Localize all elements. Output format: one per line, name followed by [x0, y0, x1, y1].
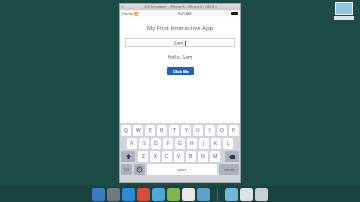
staticText: S — [143, 140, 146, 147]
staticText: T — [173, 127, 176, 134]
staticText: Z — [142, 153, 145, 160]
staticText: E — [149, 127, 152, 134]
staticText: D — [154, 140, 158, 147]
staticText: P — [232, 127, 236, 134]
button[interactable]: N — [198, 151, 208, 162]
button[interactable]: Delete — [225, 151, 239, 162]
button[interactable]: R — [157, 125, 167, 136]
button[interactable]: Y — [181, 125, 191, 136]
button[interactable]: W — [133, 125, 143, 136]
button[interactable]: I — [205, 125, 215, 136]
button[interactable]: Close — [121, 5, 124, 8]
button[interactable]: Click Me — [167, 67, 194, 75]
button[interactable]: Mail — [152, 188, 165, 201]
button[interactable]: V — [174, 151, 184, 162]
button[interactable]: Desktop file icon — [333, 2, 355, 20]
button[interactable]: U — [193, 125, 203, 136]
button[interactable]: Downloads — [225, 188, 238, 201]
button[interactable]: K — [211, 138, 221, 149]
staticText: G — [178, 140, 182, 147]
button[interactable]: Launchpad — [107, 188, 120, 201]
staticText: F — [167, 140, 170, 147]
staticText: Q — [124, 127, 128, 134]
staticText: I — [209, 127, 211, 134]
button[interactable]: M — [210, 151, 220, 162]
button[interactable]: Xcode — [182, 188, 195, 201]
button[interactable]: Notes — [197, 188, 210, 201]
button[interactable]: D — [151, 138, 161, 149]
button[interactable]: P — [229, 125, 239, 136]
button[interactable]: Trash — [255, 188, 268, 201]
button[interactable]: H — [187, 138, 197, 149]
staticText: N — [201, 153, 205, 160]
button[interactable]: G — [175, 138, 185, 149]
staticText: 9:41 AM — [178, 11, 192, 16]
button[interactable]: O — [217, 125, 227, 136]
staticText: B — [189, 153, 193, 160]
button[interactable]: Shift — [121, 151, 135, 162]
button[interactable]: return — [219, 164, 239, 175]
button[interactable]: Q — [121, 125, 131, 136]
button[interactable]: Z — [138, 151, 148, 162]
button[interactable]: L — [223, 138, 233, 149]
staticText: A — [130, 140, 134, 147]
staticText: My First Interactive App — [125, 24, 235, 32]
staticText: Click Me — [173, 69, 189, 74]
staticText: K — [214, 140, 218, 147]
button[interactable]: Documents — [240, 188, 253, 201]
button[interactable]: Safari — [122, 188, 135, 201]
staticText: R — [160, 127, 164, 134]
staticText: H — [190, 140, 194, 147]
button[interactable]: F — [163, 138, 173, 149]
staticText: Y — [185, 127, 188, 134]
staticText: X — [154, 153, 157, 160]
staticText: iOS Simulator – iPhone 6 – iPhone 6 / iO… — [144, 4, 217, 9]
staticText: Hello, Sam — [125, 54, 235, 61]
staticText: C — [165, 153, 169, 160]
staticText: W — [136, 127, 141, 134]
button[interactable]: C — [162, 151, 172, 162]
staticText: O — [220, 127, 224, 134]
button[interactable]: space — [147, 164, 217, 175]
staticText: L — [227, 140, 230, 147]
staticText: Carrier 📶 — [122, 11, 139, 16]
button[interactable]: T — [169, 125, 179, 136]
staticText: Sam — [174, 40, 184, 46]
staticText: U — [196, 127, 200, 134]
button[interactable]: Sam — [125, 38, 235, 47]
staticText: space — [177, 167, 187, 172]
staticText: return — [224, 167, 235, 172]
button[interactable]: A — [127, 138, 137, 149]
staticText: J — [203, 140, 205, 147]
button[interactable]: Numbers — [121, 164, 132, 175]
button[interactable]: B — [186, 151, 196, 162]
button[interactable]: Messages — [167, 188, 180, 201]
button[interactable]: J — [199, 138, 209, 149]
staticText: 123 — [123, 167, 130, 172]
button[interactable]: Finder — [92, 188, 105, 201]
staticText: V — [177, 153, 181, 160]
button[interactable]: S — [139, 138, 149, 149]
button[interactable]: Chrome — [137, 188, 150, 201]
button[interactable]: E — [145, 125, 155, 136]
button[interactable]: Emoji — [134, 164, 145, 175]
button[interactable]: X — [150, 151, 160, 162]
staticText: M — [213, 153, 218, 160]
